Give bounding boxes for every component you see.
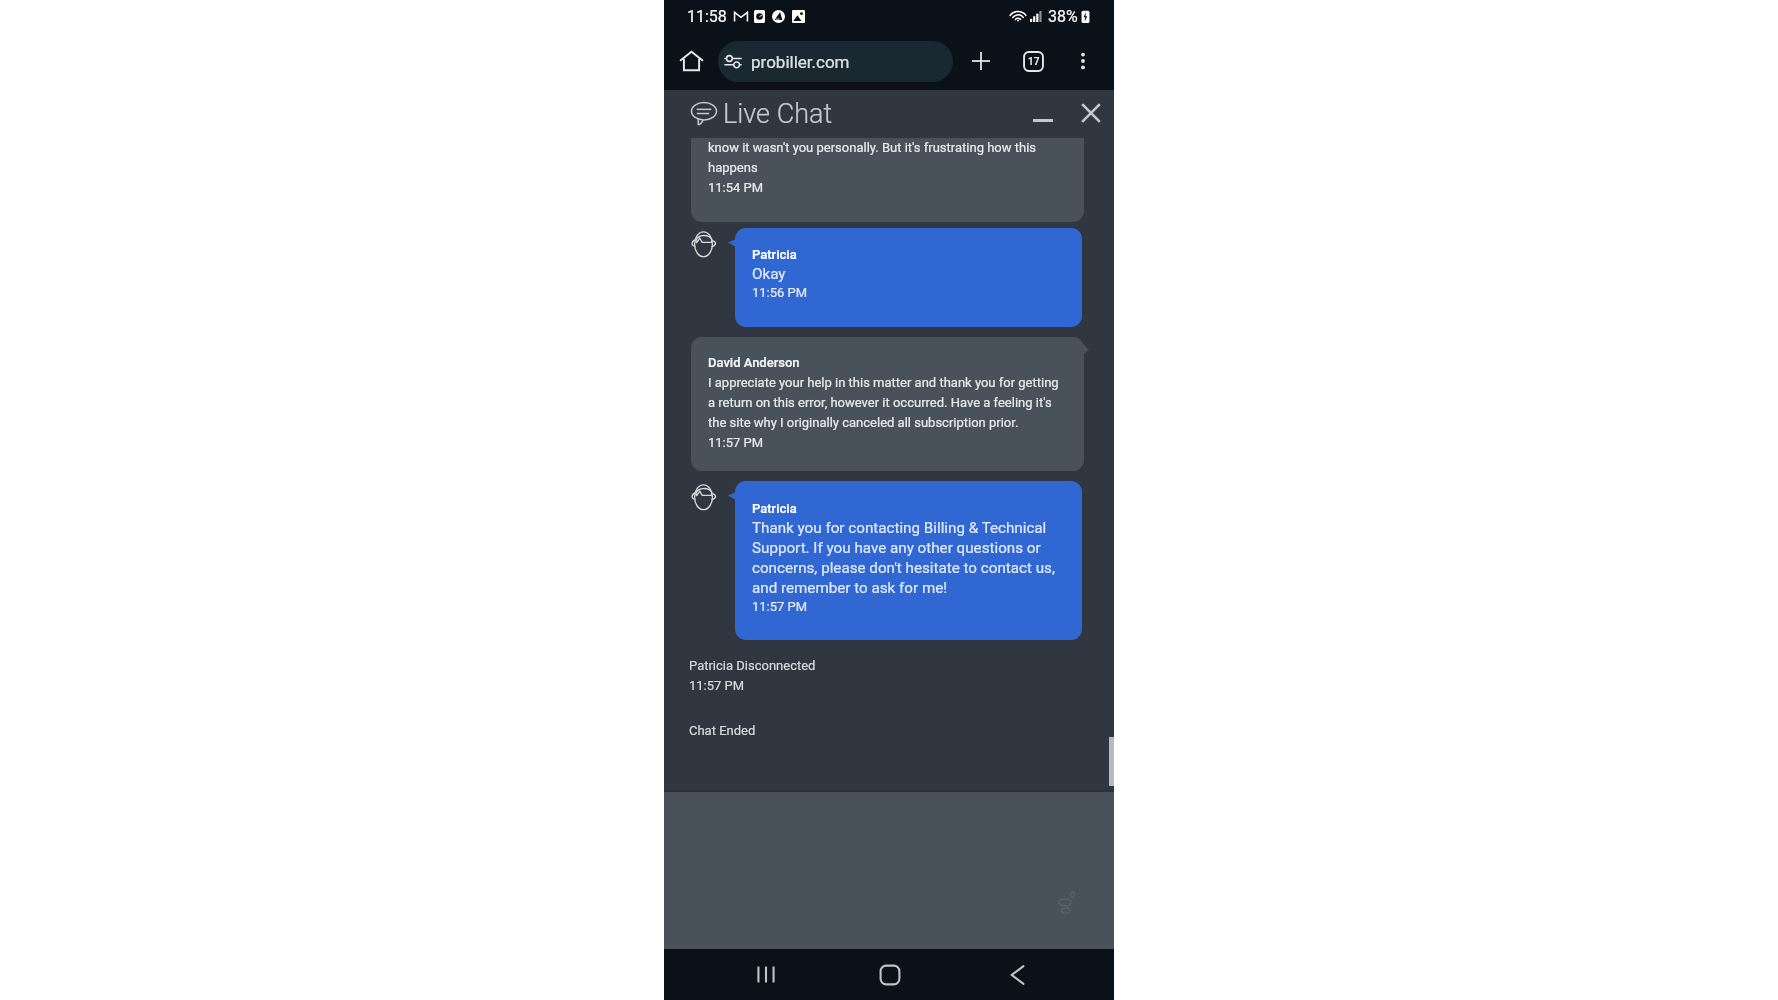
button[interactable]: More options [1062, 32, 1104, 90]
staticText: Live Chat [723, 99, 833, 129]
staticText: 17 [1028, 56, 1040, 68]
button[interactable]: probiller.com [718, 41, 953, 82]
button[interactable]: Close [1069, 90, 1114, 133]
staticText: Patricia [752, 244, 797, 263]
button[interactable]: Patricia [735, 481, 1082, 640]
staticText: Support. If you have any other questions… [752, 537, 1041, 557]
button[interactable]: Home [866, 949, 914, 1000]
button[interactable]: know it wasn't you personally. But it's … [691, 138, 1084, 222]
button[interactable]: Back [993, 949, 1041, 1000]
staticText: 11:57 PM [752, 597, 808, 615]
staticText: and remember to ask for me! [752, 577, 948, 597]
staticText: probiller.com [751, 52, 850, 72]
staticText: happens [708, 156, 758, 176]
button[interactable]: Recent apps [742, 949, 790, 1000]
button[interactable]: Tabs [1009, 32, 1057, 90]
staticText: 11:57 PM [689, 674, 745, 694]
staticText: 11:58 [687, 7, 727, 26]
staticText: Thank you for contacting Billing & Techn… [752, 517, 1047, 537]
staticText: know it wasn't you personally. But it's … [708, 138, 1037, 156]
button[interactable]: Home [672, 32, 710, 90]
button[interactable]: Patricia [735, 228, 1082, 327]
staticText: Patricia [752, 498, 797, 517]
button[interactable]: David Anderson [691, 337, 1084, 471]
staticText: David Anderson [708, 351, 800, 371]
staticText: 11:57 PM [708, 431, 764, 451]
staticText: Okay [752, 263, 786, 283]
button[interactable]: Minimize [1017, 90, 1069, 133]
staticText: I appreciate your help in this matter an… [708, 371, 1059, 391]
staticText: a return on this error, however it occur… [708, 391, 1052, 411]
staticText: Patricia Disconnected [689, 654, 816, 674]
staticText: 38% [1048, 7, 1078, 26]
staticText: 11:56 PM [752, 283, 808, 301]
staticText: 11:54 PM [708, 176, 764, 196]
staticText: concerns, please don't hesitate to conta… [752, 557, 1055, 577]
staticText: Chat Ended [689, 719, 756, 739]
staticText: the site why I originally canceled all s… [708, 411, 1019, 431]
button[interactable]: New tab [957, 32, 1005, 90]
